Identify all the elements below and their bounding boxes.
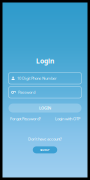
staticText: LOGIN <box>39 105 51 111</box>
staticText: Login <box>36 56 54 65</box>
staticText: SIGNUP <box>40 148 50 152</box>
staticText: Don't have account? <box>28 136 62 142</box>
button[interactable]: Login with OTP <box>55 116 80 121</box>
staticText: Forgot Password? <box>10 116 41 121</box>
staticText: Password <box>18 90 35 95</box>
button[interactable]: SIGNUP <box>33 146 57 153</box>
staticText: Login with OTP <box>55 116 80 121</box>
button[interactable]: LOGIN <box>8 104 81 113</box>
staticText: 10 Digit Phone Number <box>17 76 57 81</box>
button[interactable]: Forgot Password? <box>10 116 41 121</box>
